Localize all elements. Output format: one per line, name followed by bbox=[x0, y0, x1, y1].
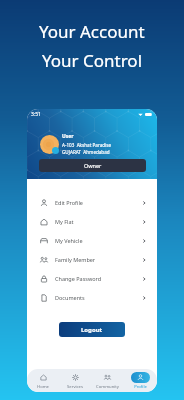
staticText: Edit Profile bbox=[55, 199, 83, 206]
staticText: Logout bbox=[81, 326, 103, 334]
staticText: 3:51 bbox=[31, 111, 41, 118]
staticText: Profile bbox=[134, 384, 147, 390]
staticText: Your Control bbox=[42, 49, 143, 72]
staticText: Services bbox=[67, 384, 83, 390]
button[interactable]: Owner bbox=[39, 159, 146, 172]
button[interactable]: Logout bbox=[59, 322, 125, 337]
button[interactable]: My Vehicle bbox=[27, 231, 157, 250]
staticText: My Flat bbox=[55, 218, 74, 225]
button[interactable]: Change Password bbox=[27, 269, 157, 288]
staticText: Documents bbox=[55, 294, 85, 301]
staticText: GUJARAT Ahmedabad bbox=[62, 149, 110, 155]
staticText: Family Member bbox=[55, 256, 96, 263]
staticText: Your Account bbox=[39, 20, 145, 43]
staticText: My Vehicle bbox=[55, 237, 83, 244]
staticText: User bbox=[62, 133, 74, 140]
button[interactable]: Home bbox=[27, 369, 59, 392]
staticText: A-103 Akshat Paradise bbox=[62, 142, 112, 148]
button[interactable]: Family Member bbox=[27, 250, 157, 269]
staticText: Owner bbox=[84, 162, 102, 169]
staticText: Community bbox=[96, 384, 119, 390]
button[interactable]: Documents bbox=[27, 288, 157, 307]
staticText: Change Password bbox=[55, 275, 102, 282]
button[interactable]: Edit Profile bbox=[27, 193, 157, 212]
button[interactable]: Profile bbox=[124, 369, 157, 392]
button[interactable]: My Flat bbox=[27, 212, 157, 231]
button[interactable]: Services bbox=[59, 369, 91, 392]
staticText: Home bbox=[37, 384, 49, 390]
button[interactable]: Community bbox=[91, 369, 124, 392]
